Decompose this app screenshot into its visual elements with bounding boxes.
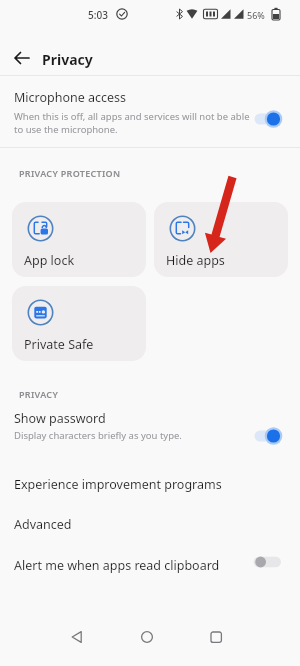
staticText: Hide apps [166, 252, 225, 269]
button[interactable]: Advanced [0, 504, 300, 544]
button[interactable] [196, 617, 236, 657]
button[interactable] [57, 617, 97, 657]
staticText: Private Safe [24, 336, 94, 353]
button[interactable]: Private Safe [12, 286, 146, 361]
staticText: When this is off, all apps and services … [14, 110, 250, 123]
staticText: PRIVACY PROTECTION [19, 167, 121, 179]
button[interactable] [127, 617, 167, 657]
button[interactable]: App lock [12, 202, 146, 277]
staticText: Privacy [42, 50, 93, 69]
staticText: 5:03 [88, 8, 108, 22]
button[interactable] [6, 42, 38, 74]
button[interactable]: Experience improvement programs [0, 462, 300, 504]
staticText: Advanced [14, 516, 72, 533]
button[interactable]: Show password [0, 403, 300, 448]
staticText: Microphone access [14, 89, 127, 106]
button[interactable] [252, 552, 284, 572]
button[interactable] [253, 109, 285, 129]
staticText: Alert me when apps read clipboard [14, 557, 220, 574]
staticText: 56% [247, 9, 265, 21]
staticText: Show password [14, 410, 106, 427]
staticText: Experience improvement programs [14, 476, 222, 493]
button[interactable]: Alert me when apps read clipboard [0, 544, 300, 584]
staticText: to use the microphone. [14, 123, 118, 136]
staticText: Display characters briefly as you type. [14, 429, 182, 442]
staticText: PRIVACY [19, 388, 59, 400]
button[interactable] [253, 426, 285, 446]
button[interactable]: Hide apps [154, 202, 288, 277]
button[interactable]: Microphone access [0, 76, 300, 147]
staticText: App lock [24, 252, 75, 269]
